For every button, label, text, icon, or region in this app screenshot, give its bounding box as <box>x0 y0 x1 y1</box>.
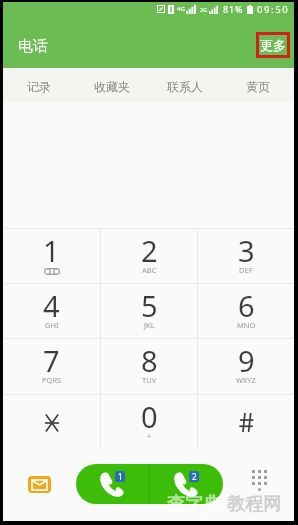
staticText: 2G <box>200 6 208 13</box>
button[interactable]: 记录 <box>3 68 75 102</box>
staticText: 4G <box>177 5 185 13</box>
staticText: 黄页 <box>246 79 270 94</box>
button[interactable] <box>198 395 294 450</box>
button[interactable]: Message <box>28 476 51 493</box>
button[interactable] <box>3 395 100 450</box>
staticText: 3 <box>238 231 255 270</box>
button[interactable]: Call with SIM 2 <box>150 464 223 504</box>
button[interactable]: 1 <box>3 229 100 283</box>
staticText: 联系人 <box>167 79 203 94</box>
staticText: DEF <box>239 265 253 275</box>
staticText: 9 <box>238 341 255 380</box>
staticText: TUV <box>142 375 157 385</box>
button[interactable]: 3 <box>198 229 294 283</box>
staticText: MNO <box>237 320 256 330</box>
button[interactable]: 收藏夹 <box>75 68 148 102</box>
button[interactable]: 7 <box>3 339 100 394</box>
staticText: 09:50 <box>257 3 290 16</box>
staticText: 7 <box>43 341 60 380</box>
staticText: PQRS <box>42 375 62 385</box>
staticText: 0 <box>141 397 158 436</box>
staticText: GHI <box>45 320 59 330</box>
button[interactable]: 0 <box>101 395 197 450</box>
staticText: 8 <box>141 341 158 380</box>
staticText: 1 <box>43 231 60 270</box>
button[interactable]: 联系人 <box>148 68 221 102</box>
button[interactable]: 8 <box>101 339 197 394</box>
button[interactable]: Hide keypad <box>243 466 275 494</box>
staticText: 更多 <box>260 37 286 53</box>
staticText: ABC <box>142 265 157 275</box>
staticText: 收藏夹 <box>94 79 130 94</box>
staticText: 2 <box>141 231 158 270</box>
staticText: 记录 <box>27 79 51 94</box>
staticText: JKL <box>144 320 155 330</box>
staticText: 教程网 <box>227 493 281 516</box>
button[interactable]: Call with SIM 1 <box>76 464 149 504</box>
staticText: 查字典 <box>167 493 221 516</box>
button[interactable]: 5 <box>101 284 197 338</box>
button[interactable]: 9 <box>198 339 294 394</box>
button[interactable]: 6 <box>198 284 294 338</box>
staticText: 81% <box>223 3 244 15</box>
staticText: 2 <box>192 471 197 482</box>
button[interactable]: 4 <box>3 284 100 338</box>
button[interactable]: 更多 <box>256 32 290 58</box>
staticText: 6 <box>238 286 255 325</box>
staticText: WXYZ <box>236 375 256 385</box>
button[interactable]: 2 <box>101 229 197 283</box>
staticText: 1 <box>118 471 123 482</box>
staticText: 电话 <box>18 37 48 56</box>
staticText: 5 <box>141 286 158 325</box>
button[interactable]: 黄页 <box>221 68 294 102</box>
staticText: 4 <box>43 286 60 325</box>
staticText: + <box>147 431 152 441</box>
